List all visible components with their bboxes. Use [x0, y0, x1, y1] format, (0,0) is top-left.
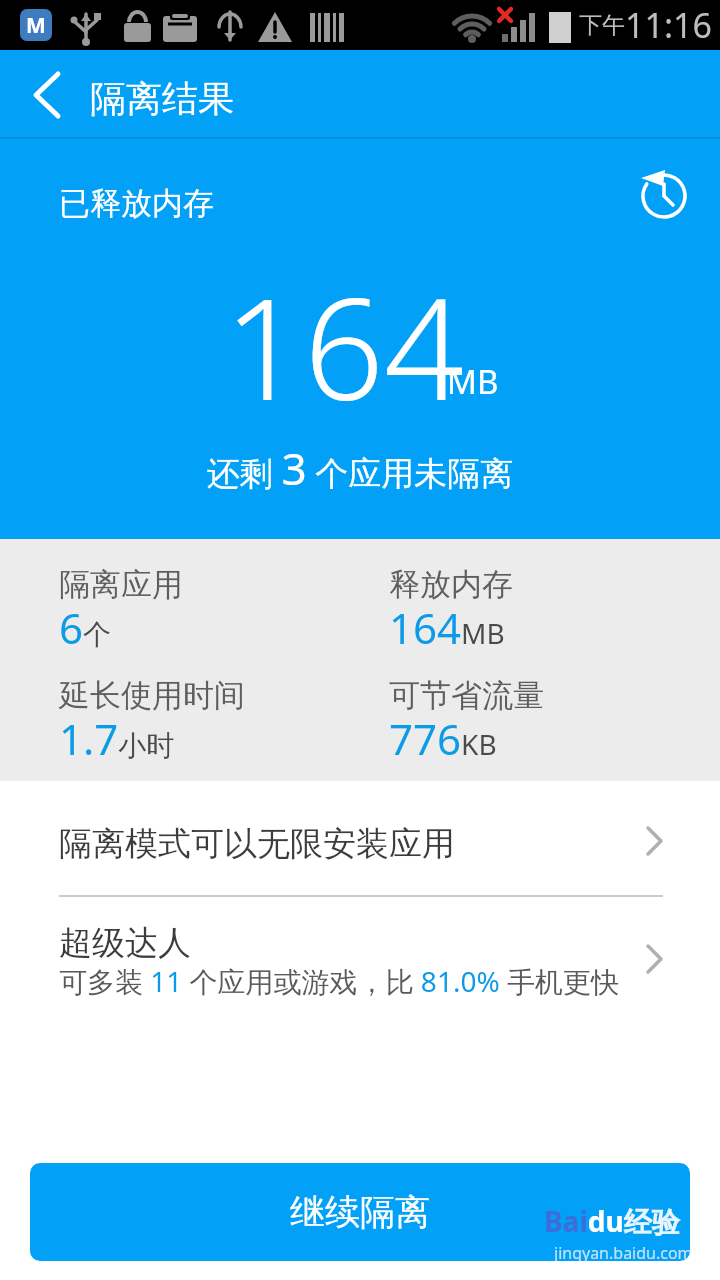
staticText: 可节省流量	[389, 676, 544, 715]
staticText: M	[26, 11, 46, 40]
button[interactable]	[630, 164, 698, 232]
staticText: 164	[224, 250, 464, 441]
staticText: 继续隔离	[290, 1190, 430, 1234]
staticText: 隔离模式可以无限安装应用	[59, 823, 455, 865]
staticText: 可多装 11 个应用或游戏，比 81.0% 手机更快	[59, 962, 619, 1000]
staticText: 已释放内存	[59, 184, 214, 223]
staticText: 隔离结果	[90, 76, 234, 121]
staticText: 164MB	[389, 599, 505, 656]
staticText: MB	[447, 359, 499, 404]
staticText: 11:16	[625, 2, 712, 48]
button[interactable]	[10, 62, 80, 127]
staticText: 6个	[59, 599, 112, 656]
staticText: jingyan.baidu.com	[554, 1242, 690, 1261]
staticText: 释放内存	[389, 565, 513, 604]
staticText: 776KB	[389, 710, 497, 767]
button[interactable]: 继续隔离	[30, 1163, 690, 1261]
staticText: 1.7小时	[59, 710, 175, 767]
button[interactable]: 隔离模式可以无限安装应用	[0, 787, 720, 895]
staticText: 超级达人	[59, 922, 191, 964]
staticText: 延长使用时间	[59, 676, 245, 715]
staticText: Baidu经验	[544, 1202, 680, 1240]
button[interactable]: 超级达人	[0, 897, 720, 1022]
staticText: 还剩 3 个应用未隔离	[0, 438, 720, 498]
staticText: 隔离应用	[59, 565, 183, 604]
staticText: 下午	[579, 11, 625, 40]
